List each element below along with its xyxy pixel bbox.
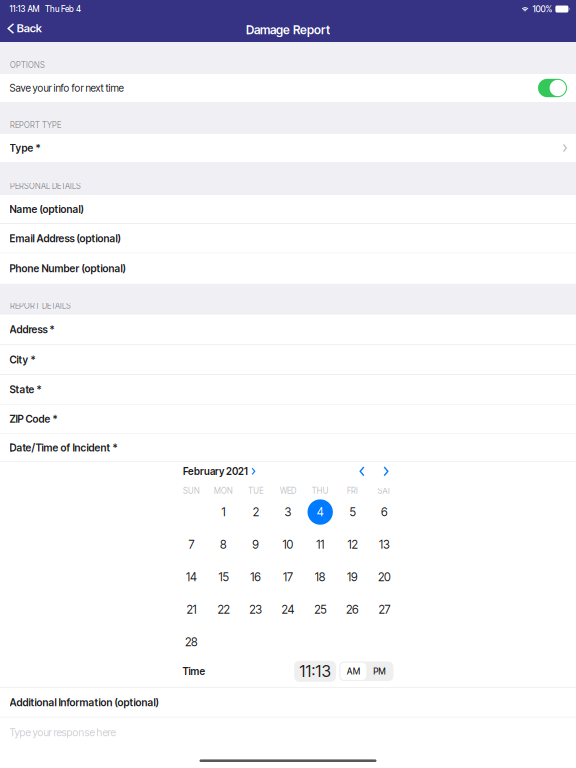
button[interactable]: 10 (272, 528, 304, 561)
staticText: 21 (186, 602, 196, 616)
button[interactable]: 14 (175, 561, 207, 593)
button[interactable]: Type * (0, 134, 576, 162)
button[interactable]: 23 (240, 593, 272, 626)
button[interactable]: Back (0, 18, 49, 42)
button[interactable]: Date/Time of Incident * (0, 434, 576, 461)
staticText: 11 (316, 537, 324, 551)
staticText: 3 (284, 505, 291, 519)
staticText: 26 (346, 602, 359, 616)
staticText: 5 (349, 505, 355, 519)
button[interactable]: 18 (304, 561, 336, 593)
button[interactable]: Type your response here (0, 717, 576, 747)
staticText: Type your response here (10, 726, 116, 739)
staticText: 18 (315, 570, 326, 584)
button[interactable]: 15 (207, 561, 240, 593)
staticText: 8 (220, 537, 227, 551)
staticText: 14 (186, 570, 197, 584)
staticText: AM (347, 666, 360, 677)
button[interactable]: State * (0, 375, 576, 404)
staticText: 25 (314, 602, 326, 616)
staticText: Additional Information (optional) (10, 696, 159, 709)
button[interactable]: 24 (272, 593, 304, 626)
button[interactable]: Previous month (350, 464, 374, 479)
staticText: 22 (218, 602, 230, 616)
button[interactable]: 17 (272, 561, 304, 593)
staticText: Phone Number (optional) (10, 262, 126, 275)
staticText: WED (280, 486, 296, 496)
staticText: 23 (249, 602, 262, 616)
staticText: Email Address (optional) (10, 232, 121, 245)
button[interactable]: 28 (175, 626, 207, 658)
button[interactable]: February 2021 (183, 464, 255, 479)
staticText: 16 (250, 570, 261, 584)
button[interactable]: Name (optional) (0, 195, 576, 223)
staticText: 11:13 (300, 662, 331, 681)
button[interactable]: 20 (368, 561, 401, 593)
staticText: REPORT DETAILS (10, 301, 71, 311)
staticText: 24 (281, 602, 294, 616)
button[interactable]: 16 (240, 561, 272, 593)
button[interactable]: Save your info for next time (538, 79, 567, 97)
staticText: 4 (317, 505, 324, 519)
staticText: FRI (347, 486, 358, 496)
button[interactable]: 21 (175, 593, 207, 626)
button[interactable]: 9 (240, 528, 272, 561)
staticText: 13 (379, 537, 390, 551)
button[interactable]: 13 (368, 528, 401, 561)
button[interactable]: 2 (240, 496, 272, 528)
staticText: 9 (252, 537, 259, 551)
button[interactable]: 22 (207, 593, 240, 626)
staticText: 100% (532, 4, 552, 14)
staticText: State * (10, 383, 42, 396)
button[interactable]: Address * (0, 315, 576, 344)
button[interactable]: Additional Information (optional) (0, 688, 576, 717)
staticText: MON (214, 486, 233, 496)
button[interactable]: 27 (368, 593, 401, 626)
staticText: Damage Report (246, 23, 330, 37)
button[interactable]: Phone Number (optional) (0, 253, 576, 284)
staticText: 20 (378, 570, 391, 584)
staticText: OPTIONS (10, 60, 45, 70)
button[interactable]: AM (340, 663, 366, 680)
staticText: 15 (219, 570, 229, 584)
staticText: Thu Feb 4 (45, 4, 81, 14)
staticText: 27 (379, 602, 391, 616)
staticText: Address * (10, 323, 55, 336)
button[interactable]: ZIP Code * (0, 405, 576, 434)
button[interactable]: PM (366, 663, 392, 680)
button[interactable]: Next month (374, 464, 398, 479)
button[interactable]: 11:13 (294, 661, 336, 682)
button[interactable]: 6 (368, 496, 401, 528)
button[interactable]: 5 (336, 496, 368, 528)
button[interactable]: 7 (175, 528, 207, 561)
button[interactable]: 11 (304, 528, 336, 561)
staticText: Date/Time of Incident * (10, 441, 118, 454)
button[interactable]: 4 (304, 496, 336, 528)
button[interactable]: 3 (272, 496, 304, 528)
button[interactable]: City * (0, 345, 576, 374)
staticText: Save your info for next time (10, 82, 124, 94)
staticText: ZIP Code * (10, 413, 58, 425)
staticText: 10 (282, 537, 293, 551)
button[interactable]: 8 (207, 528, 240, 561)
staticText: PERSONAL DETAILS (10, 181, 81, 191)
button[interactable]: 19 (336, 561, 368, 593)
staticText: Name (optional) (10, 203, 84, 215)
button[interactable]: 25 (304, 593, 336, 626)
staticText: February 2021 (183, 465, 248, 477)
staticText: 19 (347, 570, 358, 584)
button[interactable]: 1 (207, 496, 240, 528)
staticText: Type * (10, 142, 41, 154)
button[interactable]: 26 (336, 593, 368, 626)
staticText: City * (10, 353, 36, 366)
staticText: 7 (188, 537, 194, 551)
button[interactable]: 12 (336, 528, 368, 561)
button[interactable]: Email Address (optional) (0, 224, 576, 253)
staticText: PM (373, 666, 385, 677)
